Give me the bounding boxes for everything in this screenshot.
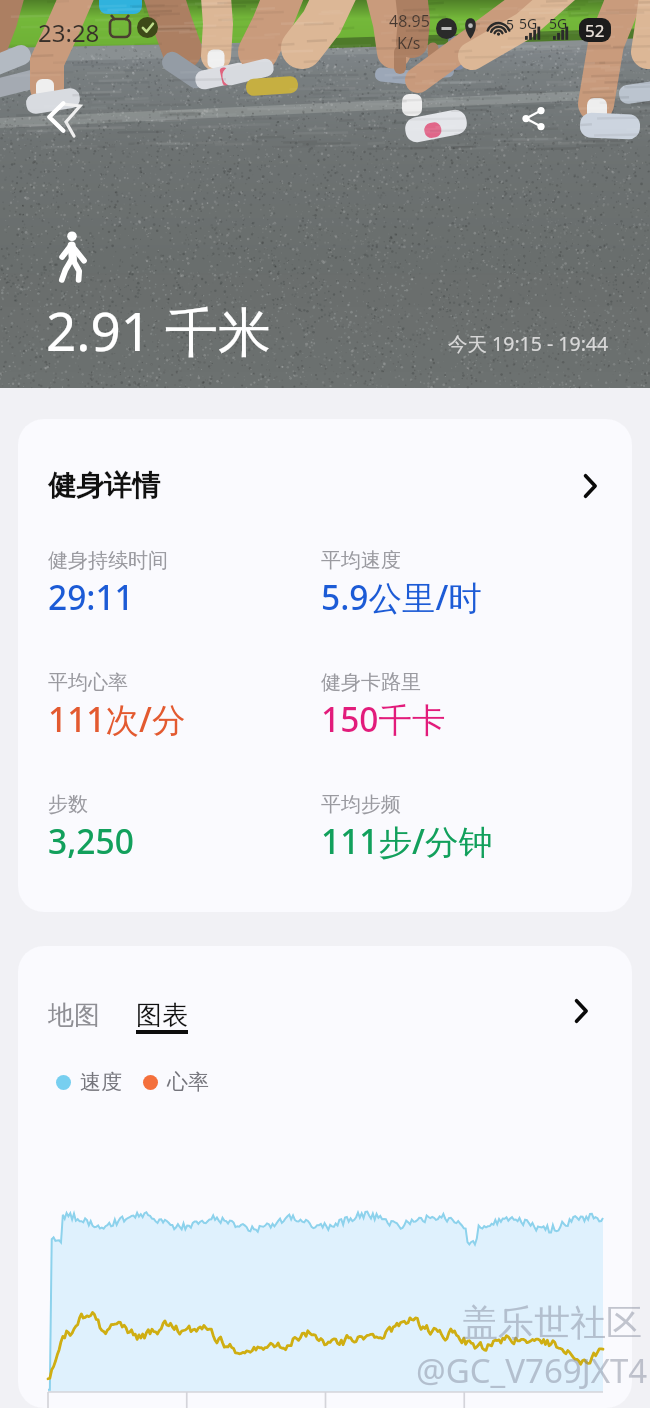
staticText: 52 [585,19,605,42]
staticText: 23:28 [38,16,100,49]
staticText: 地图 [48,999,100,1032]
staticText: 5 [506,15,515,34]
staticText: 平均速度 [321,548,401,573]
staticText: 健身详情 [48,468,160,503]
staticText: 150千卡 [321,696,446,742]
staticText: @GC_V769JXT4 [416,1348,648,1393]
staticText: 平均心率 [48,670,128,695]
staticText: 111步/分钟 [321,818,492,864]
button[interactable]: Share [512,97,554,139]
staticText: 平均步频 [321,792,401,817]
staticText: 今天 19:15 - 19:44 [448,330,609,357]
button[interactable]: 地图 [48,999,100,1032]
staticText: 健身持续时间 [48,548,168,573]
staticText: 图表 [136,999,188,1032]
staticText: 5.9公里/时 [321,574,482,620]
staticText: 2.91 千米 [46,294,271,366]
staticText: 速度 [80,1069,122,1095]
staticText: 步数 [48,792,88,817]
staticText: 3,250 [48,818,134,864]
staticText: 48.95 [389,10,430,32]
staticText: 心率 [167,1069,209,1095]
staticText: 健身卡路里 [321,670,421,695]
button[interactable]: 图表 [136,999,188,1032]
button[interactable]: Back [34,96,76,138]
staticText: 5G [519,14,538,33]
staticText: 盖乐世社区 [462,1300,642,1345]
staticText: 29:11 [48,574,134,620]
button[interactable]: Open chart [559,989,603,1033]
staticText: K/s [397,32,421,54]
staticText: 5G [549,14,568,33]
button[interactable]: 健身详情 [18,419,632,912]
staticText: 111次/分 [48,696,186,742]
